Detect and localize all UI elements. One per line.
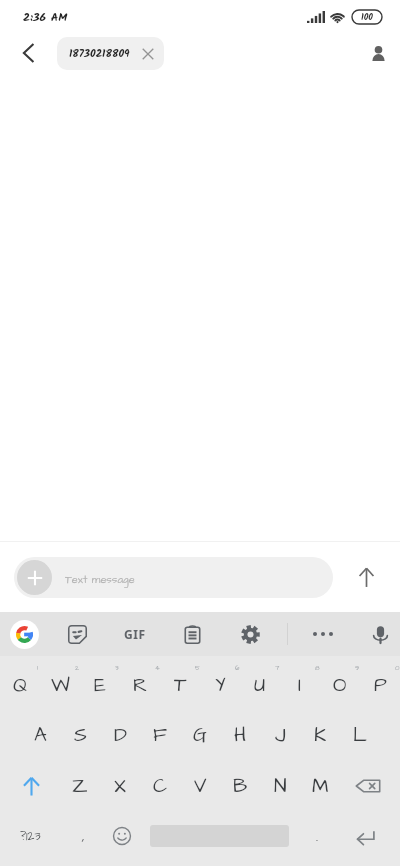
button[interactable]: S [60,710,100,760]
staticText: L [353,721,367,749]
button[interactable]: R [120,660,160,710]
button[interactable]: A [20,710,60,760]
staticText: 6 [235,663,240,673]
button[interactable]: More options [301,612,345,656]
button[interactable]: J [260,710,300,760]
staticText: J [275,721,286,749]
button[interactable]: Contact details [358,33,398,73]
staticText: 100 [361,10,373,24]
button[interactable]: G [180,710,220,760]
button[interactable]: X [100,761,140,811]
staticText: 9 [355,663,359,673]
button[interactable]: Q [0,660,40,710]
button[interactable]: T [160,660,200,710]
staticText: T [174,671,187,699]
button[interactable]: P [360,660,400,710]
button[interactable]: H [220,710,260,760]
staticText: O [333,671,347,699]
staticText: 4 [155,663,160,673]
button[interactable]: C [140,761,180,811]
staticText: Y [215,671,226,699]
staticText: 3 [115,663,119,673]
staticText: H [234,721,247,749]
button[interactable]: L [340,710,380,760]
staticText: X [114,772,126,800]
button[interactable]: Settings [228,612,272,656]
button[interactable]: Emoji [102,811,142,861]
button[interactable]: I [280,660,320,710]
staticText: U [254,671,266,699]
staticText: N [274,772,287,800]
button[interactable]: ?123 [10,811,50,861]
button[interactable]: Enter [345,811,385,861]
button[interactable]: E [80,660,120,710]
staticText: P [374,671,387,699]
button[interactable]: D [100,710,140,760]
button[interactable]: 18730218809 [57,37,164,70]
staticText: Q [13,671,28,699]
button[interactable]: Google search [2,612,46,656]
staticText: C [153,772,168,800]
button[interactable]: M [300,761,340,811]
button[interactable]: Y [200,660,240,710]
button[interactable]: Voice input [358,612,400,656]
button[interactable]: Text message [14,557,333,598]
staticText: GIF [124,626,146,642]
staticText: ?123 [20,828,41,845]
staticText: 7 [275,663,280,673]
button[interactable]: Shift [11,761,51,811]
button[interactable]: Backspace [348,761,388,811]
staticText: 5 [195,663,200,673]
button[interactable]: N [260,761,300,811]
staticText: A [34,721,47,749]
staticText: E [94,671,106,699]
button[interactable]: GIF [113,612,157,656]
staticText: D [114,721,127,749]
staticText: 0 [395,663,400,673]
staticText: B [233,772,248,800]
staticText: S [74,721,87,749]
button[interactable]: Send [344,555,388,599]
staticText: Z [72,772,88,800]
button[interactable]: B [220,761,260,811]
button[interactable]: Stickers [55,612,99,656]
button[interactable]: , [63,811,103,861]
staticText: G [193,721,207,749]
button[interactable]: K [300,710,340,760]
button[interactable]: V [180,761,220,811]
staticText: M [312,772,329,800]
button[interactable]: Back [8,33,48,73]
staticText: 1 [37,663,38,673]
staticText: F [153,721,167,749]
staticText: 18730218809 [69,45,130,63]
button[interactable]: O [320,660,360,710]
staticText: K [314,721,327,749]
button[interactable]: Clipboard [170,612,214,656]
button[interactable]: Z [60,761,100,811]
staticText: V [194,772,207,800]
staticText: . [316,826,319,847]
button[interactable]: U [240,660,280,710]
staticText: W [51,671,70,699]
staticText: R [133,671,148,699]
staticText: 2 [75,663,80,673]
staticText: 2:36 AM [23,8,68,27]
button[interactable]: W [40,660,80,710]
staticText: , [82,826,85,847]
staticText: Text message [65,572,135,587]
staticText: I [298,671,302,699]
button[interactable]: F [140,710,180,760]
staticText: 8 [315,663,320,673]
